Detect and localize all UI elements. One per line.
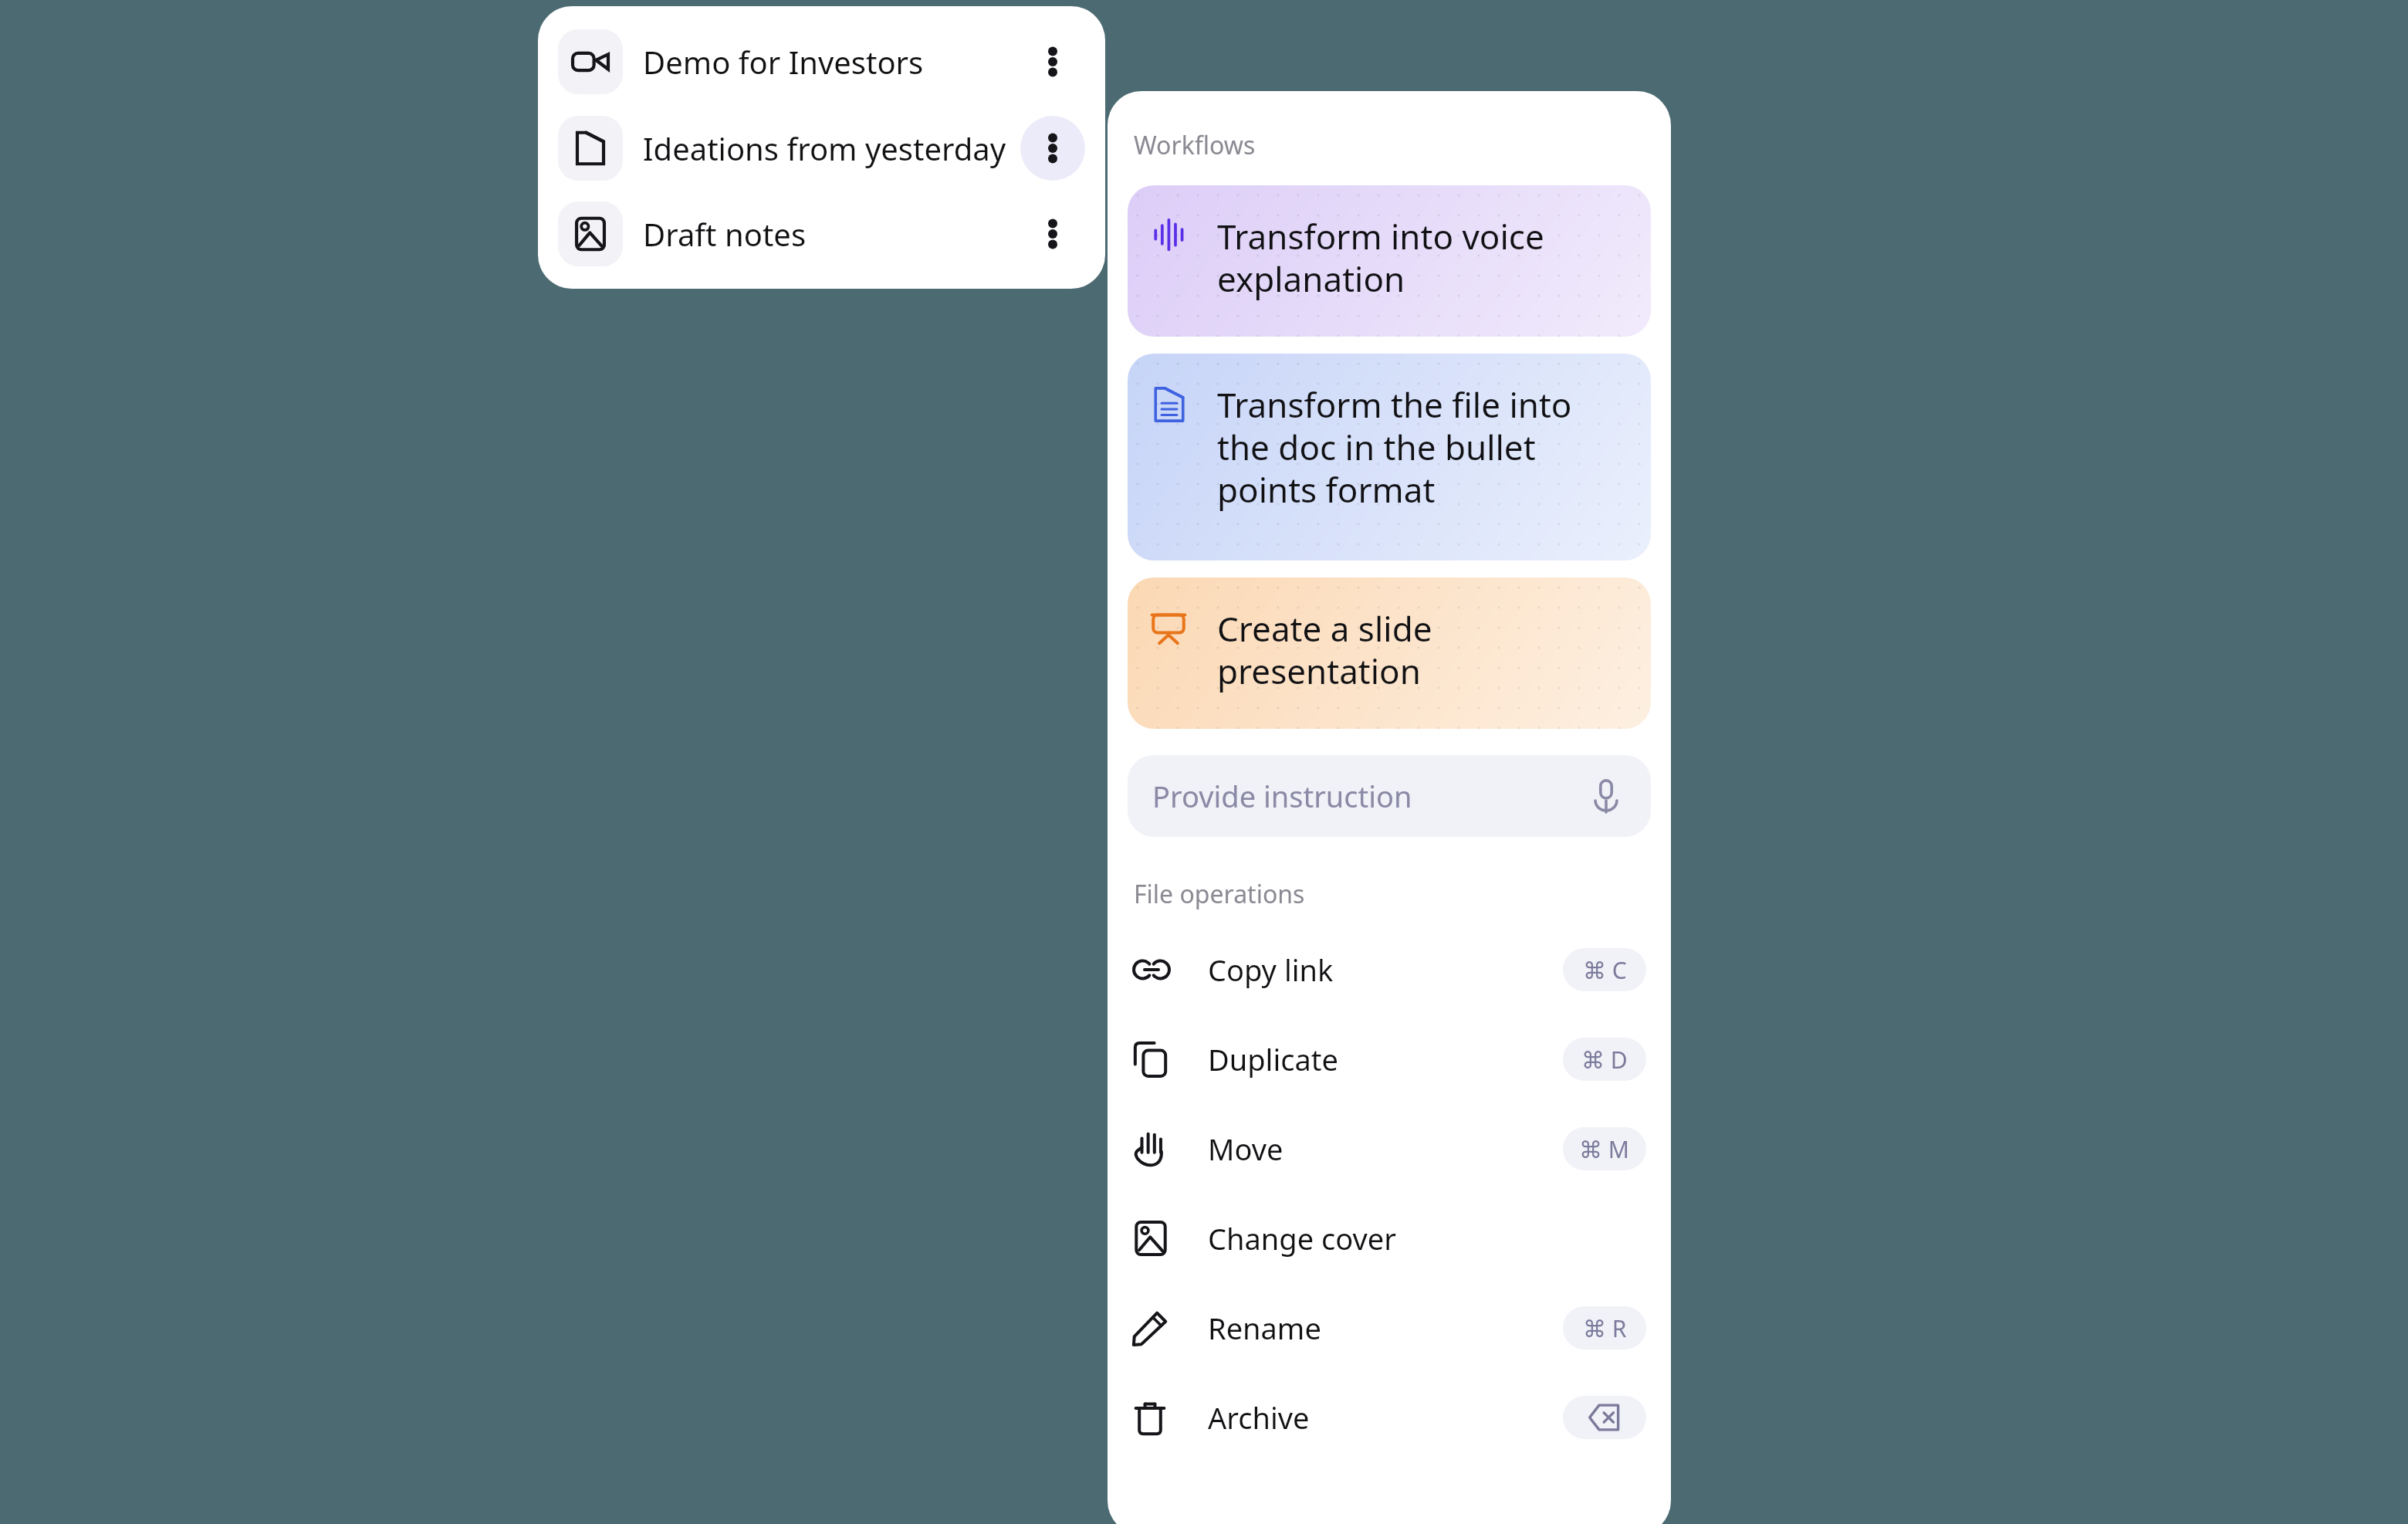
button[interactable]: Transform the file into the doc in the b… bbox=[1128, 354, 1651, 560]
button[interactable]: Archive bbox=[1128, 1373, 1651, 1462]
button[interactable]: Change cover bbox=[1128, 1194, 1651, 1283]
staticText: Change cover bbox=[1208, 1218, 1646, 1258]
staticText: Draft notes bbox=[643, 213, 1020, 255]
button[interactable]: More options bbox=[1020, 29, 1085, 94]
staticText: Provide instruction bbox=[1152, 776, 1584, 816]
staticText: Move bbox=[1208, 1129, 1563, 1169]
staticText: Transform into voice explanation bbox=[1217, 213, 1625, 302]
button[interactable]: Transform into voice explanation bbox=[1128, 185, 1651, 337]
button[interactable]: More options bbox=[1020, 202, 1085, 266]
staticText: Ideations from yesterday bbox=[643, 127, 1020, 169]
staticText: Transform the file into the doc in the b… bbox=[1217, 381, 1625, 513]
button[interactable]: Ideations from yesterday bbox=[538, 105, 1105, 191]
button[interactable]: Demo for Investors bbox=[538, 19, 1105, 105]
button[interactable]: More options bbox=[1020, 116, 1085, 181]
staticText: ⌘ M bbox=[1579, 1133, 1630, 1165]
staticText: File operations bbox=[1134, 877, 1305, 911]
staticText: Rename bbox=[1208, 1308, 1563, 1348]
staticText: ⌘ R bbox=[1583, 1312, 1627, 1344]
button[interactable]: Copy link bbox=[1128, 925, 1651, 1014]
staticText: ⌘ D bbox=[1581, 1044, 1628, 1075]
staticText: Duplicate bbox=[1208, 1039, 1563, 1079]
staticText: Demo for Investors bbox=[643, 41, 1020, 83]
button[interactable]: Draft notes bbox=[538, 191, 1105, 276]
staticText: ⌘ C bbox=[1583, 954, 1627, 986]
button[interactable]: Move bbox=[1128, 1104, 1651, 1194]
button[interactable]: Provide instruction bbox=[1128, 755, 1651, 837]
button[interactable]: Voice input bbox=[1584, 774, 1628, 818]
staticText: Copy link bbox=[1208, 950, 1563, 990]
staticText: Workflows bbox=[1134, 128, 1256, 162]
button[interactable]: Create a slide presentation bbox=[1128, 577, 1651, 729]
staticText: Archive bbox=[1208, 1397, 1563, 1438]
staticText: Create a slide presentation bbox=[1217, 605, 1625, 694]
button[interactable]: Duplicate bbox=[1128, 1014, 1651, 1104]
button[interactable]: Rename bbox=[1128, 1283, 1651, 1373]
